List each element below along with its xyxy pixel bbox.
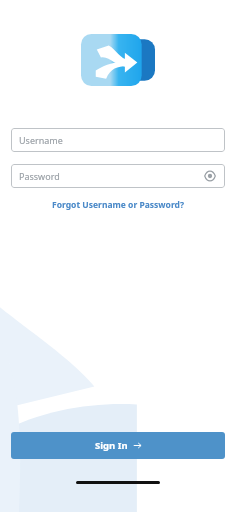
button[interactable]: Username: [11, 128, 225, 152]
staticText: Forgot Username or Password?: [52, 199, 184, 211]
button[interactable]: Password: [11, 164, 225, 188]
button[interactable]: Forgot Username or Password?: [46, 197, 190, 213]
staticText: Password: [19, 170, 203, 182]
staticText: Sign In: [95, 439, 128, 452]
button[interactable]: Sign In: [11, 432, 225, 459]
staticText: Username: [19, 134, 217, 146]
button[interactable]: Show password: [203, 169, 217, 183]
